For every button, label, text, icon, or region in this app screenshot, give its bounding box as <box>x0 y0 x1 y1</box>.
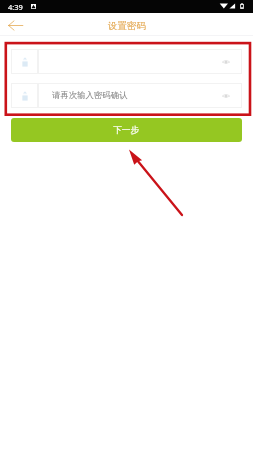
button[interactable]: Toggle password visibility <box>219 89 232 102</box>
button[interactable]: Back <box>5 15 25 35</box>
button[interactable]: Toggle password visibility <box>219 55 232 68</box>
staticText: 请再次输入密码确认 <box>52 90 128 101</box>
button[interactable]: 下一步 <box>11 118 242 142</box>
button[interactable]: 请再次输入密码确认 <box>38 83 242 108</box>
staticText: 4:39 <box>8 2 23 12</box>
button[interactable]: 请输入密码 <box>38 49 242 74</box>
staticText: 设置密码 <box>108 20 146 32</box>
staticText: 下一步 <box>113 125 140 136</box>
